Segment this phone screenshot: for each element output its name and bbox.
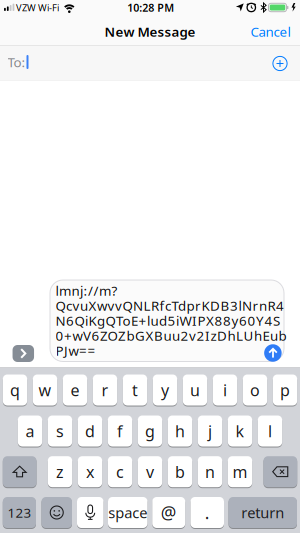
button[interactable]: Add Contact (270, 53, 290, 73)
staticText: l (268, 420, 272, 442)
button[interactable]: w (33, 374, 57, 406)
staticText: d (85, 420, 95, 442)
button[interactable]: Delete (263, 456, 297, 488)
staticText: New Message (104, 23, 195, 40)
staticText: N6QiKgQToE+lud5iWIPX88y60Y4S (55, 312, 280, 329)
staticText: PJw== (55, 342, 95, 359)
button[interactable]: t (123, 374, 147, 406)
staticText: m (232, 461, 247, 482)
button[interactable]: f (108, 415, 132, 447)
button[interactable]: p (273, 374, 297, 406)
button[interactable]: @ (152, 496, 185, 528)
button[interactable]: Cancel (250, 23, 290, 40)
staticText: e (70, 379, 79, 401)
staticText: f (117, 420, 123, 442)
staticText: VZW Wi-Fi (16, 1, 59, 14)
staticText: v (146, 461, 154, 482)
staticText: space (108, 503, 147, 522)
button[interactable]: Dictate (77, 496, 103, 528)
staticText: To: (7, 53, 25, 71)
button[interactable]: space (108, 496, 147, 528)
button[interactable]: Emoji (41, 496, 72, 528)
button[interactable]: q (3, 374, 27, 406)
staticText: b (175, 461, 185, 482)
button[interactable]: u (183, 374, 207, 406)
staticText: . (205, 501, 210, 524)
staticText: lmnj://m? (55, 282, 117, 299)
staticText: i (223, 379, 227, 401)
staticText: a (25, 420, 34, 442)
staticText: p (280, 379, 290, 401)
button[interactable]: g (138, 415, 162, 447)
button[interactable]: d (78, 415, 102, 447)
staticText: 123 (7, 504, 31, 521)
staticText: n (205, 461, 215, 482)
button[interactable]: i (213, 374, 237, 406)
button[interactable]: b (168, 456, 192, 488)
staticText: w (38, 379, 51, 401)
staticText: Cancel (250, 23, 290, 40)
staticText: @ (161, 501, 177, 524)
button[interactable]: a (18, 415, 42, 447)
button[interactable]: return (228, 496, 297, 528)
staticText: t (132, 379, 138, 401)
staticText: c (116, 461, 124, 482)
staticText: QcvuXwvvQNLRfcTdprKDB3lNrnR4 (55, 297, 284, 314)
button[interactable]: j (198, 415, 222, 447)
staticText: z (56, 461, 64, 482)
button[interactable]: h (168, 415, 192, 447)
button[interactable]: c (108, 456, 132, 488)
staticText: 10:28 PM (127, 0, 174, 15)
button[interactable]: x (78, 456, 102, 488)
staticText: r (101, 379, 108, 401)
button[interactable]: Shift (3, 456, 36, 488)
button[interactable]: s (48, 415, 72, 447)
staticText: o (250, 379, 260, 401)
button[interactable]: 123 (3, 496, 36, 528)
staticText: x (86, 461, 94, 482)
staticText: 0+wV6ZOZbGXBuu2v2IzDhLUhEub (55, 327, 286, 344)
button[interactable]: k (228, 415, 252, 447)
staticText: h (175, 420, 185, 442)
staticText: g (145, 420, 155, 442)
button[interactable]: e (63, 374, 87, 406)
button[interactable]: r (93, 374, 117, 406)
button[interactable]: z (48, 456, 72, 488)
button[interactable]: l (258, 415, 282, 447)
staticText: q (10, 379, 20, 401)
staticText: j (208, 420, 212, 442)
button[interactable]: y (153, 374, 177, 406)
button[interactable]: Send (264, 344, 282, 362)
button[interactable]: m (228, 456, 252, 488)
staticText: s (56, 420, 64, 442)
button[interactable]: . (190, 496, 224, 528)
staticText: return (241, 503, 284, 522)
button[interactable]: o (243, 374, 267, 406)
staticText: k (235, 420, 244, 442)
button[interactable]: Show apps (13, 345, 34, 362)
staticText: y (161, 379, 169, 401)
staticText: u (190, 379, 200, 401)
button[interactable]: v (138, 456, 162, 488)
button[interactable]: n (198, 456, 222, 488)
